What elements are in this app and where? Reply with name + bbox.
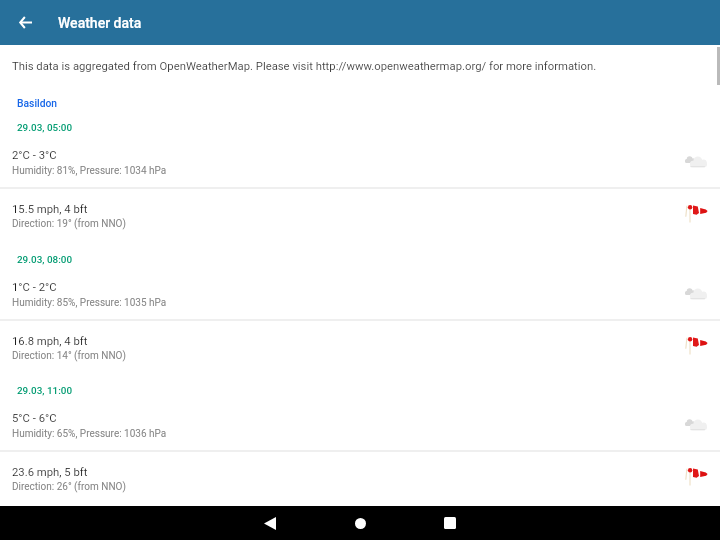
button[interactable]: Home	[315, 506, 405, 540]
staticText: Humidity: 81%, Pressure: 1034 hPa	[12, 165, 167, 177]
staticText: Humidity: 85%, Pressure: 1035 hPa	[12, 297, 167, 309]
staticText: 29.03, 11:00	[17, 385, 72, 397]
staticText: 5°C - 6°C	[12, 412, 57, 425]
staticText: 29.03, 08:00	[17, 254, 72, 266]
staticText: 16.8 mph, 4 bft	[12, 335, 88, 348]
button[interactable]: 5°C - 6°C	[0, 399, 720, 450]
button[interactable]: Back	[225, 506, 315, 540]
staticText: This data is aggregated from OpenWeather…	[12, 60, 597, 73]
staticText: Basildon	[17, 97, 58, 109]
staticText: 29.03, 05:00	[17, 122, 72, 134]
staticText: 2°C - 3°C	[12, 149, 57, 162]
staticText: Direction: 14° (from NNO)	[12, 350, 126, 362]
button[interactable]: Basildon	[17, 97, 58, 109]
button[interactable]: Recent apps	[405, 506, 495, 540]
staticText: 15.5 mph, 4 bft	[12, 203, 88, 216]
staticText: 23.6 mph, 5 bft	[12, 466, 88, 479]
staticText: Direction: 19° (from NNO)	[12, 218, 126, 230]
staticText: 1°C - 2°C	[12, 281, 57, 294]
button[interactable]: 23.6 mph, 5 bft	[0, 451, 720, 503]
button[interactable]: 1°C - 2°C	[0, 268, 720, 319]
staticText: Weather data	[58, 15, 142, 31]
staticText: Humidity: 65%, Pressure: 1036 hPa	[12, 428, 167, 440]
button[interactable]: 15.5 mph, 4 bft	[0, 188, 720, 240]
button[interactable]: Navigate up	[3, 0, 48, 45]
button[interactable]: 2°C - 3°C	[0, 136, 720, 187]
button[interactable]: 16.8 mph, 4 bft	[0, 320, 720, 372]
staticText: Direction: 26° (from NNO)	[12, 481, 126, 493]
